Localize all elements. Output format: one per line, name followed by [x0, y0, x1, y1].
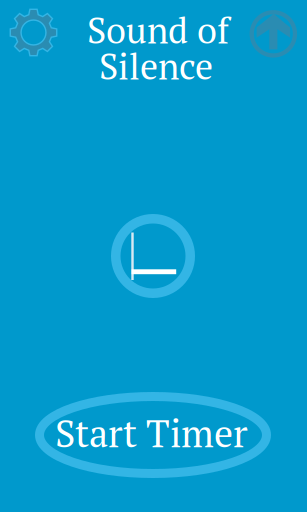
button[interactable]: Settings [10, 9, 57, 56]
staticText: Sound of [87, 6, 229, 54]
button[interactable]: Start Timer [35, 392, 271, 478]
staticText: Silence [99, 42, 213, 90]
staticText: Start Timer [55, 408, 248, 458]
button[interactable]: Share [250, 10, 297, 58]
